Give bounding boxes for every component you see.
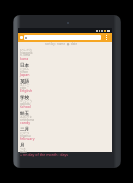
staticText: 飴玉 <box>20 111 29 117</box>
staticText: にほん <box>20 67 30 71</box>
staticText: 英語 <box>20 79 29 85</box>
staticText: n. kana <box>20 53 31 57</box>
staticText: にがつ <box>20 131 30 135</box>
button[interactable]: 英語 <box>20 78 112 94</box>
staticText: hiragana <box>20 51 33 55</box>
staticText: えいご <box>20 83 30 87</box>
staticText: あめだま <box>20 115 33 119</box>
button[interactable]: ひらがな <box>20 46 112 62</box>
staticText: amedama <box>20 118 35 122</box>
staticText: 日本 <box>20 63 29 69</box>
staticText: Japan <box>20 72 30 77</box>
staticText: English <box>20 88 33 93</box>
button[interactable]: 飴玉 <box>20 110 112 126</box>
button[interactable]: 月 <box>20 142 112 152</box>
staticText: gakkou <box>20 102 31 106</box>
button[interactable]: 学校 <box>20 94 112 110</box>
staticText: つき <box>20 147 27 151</box>
staticText: 月 <box>20 143 25 149</box>
staticText: nihon <box>20 70 29 74</box>
staticText: eigo <box>20 86 27 90</box>
staticText: + nn day of the month : days <box>20 152 69 157</box>
staticText: nigatsu <box>20 134 31 138</box>
staticText: ひらがな <box>20 48 33 52</box>
staticText: がっこう <box>20 99 33 103</box>
staticText: 二月 <box>20 127 29 133</box>
staticText: school <box>20 104 31 109</box>
button[interactable] <box>24 35 101 40</box>
button[interactable]: 二月 <box>20 126 112 142</box>
staticText: february <box>20 136 35 141</box>
button[interactable]: 日本 <box>20 62 112 78</box>
staticText: 学校 <box>20 95 29 101</box>
button[interactable]: More options <box>101 33 112 42</box>
button[interactable]: Navigation drawer <box>18 33 24 42</box>
staticText: kana <box>20 56 29 61</box>
staticText: candy <box>20 120 31 125</box>
staticText: tsuki <box>20 150 27 154</box>
staticText: sort by: name ● date <box>45 42 78 46</box>
